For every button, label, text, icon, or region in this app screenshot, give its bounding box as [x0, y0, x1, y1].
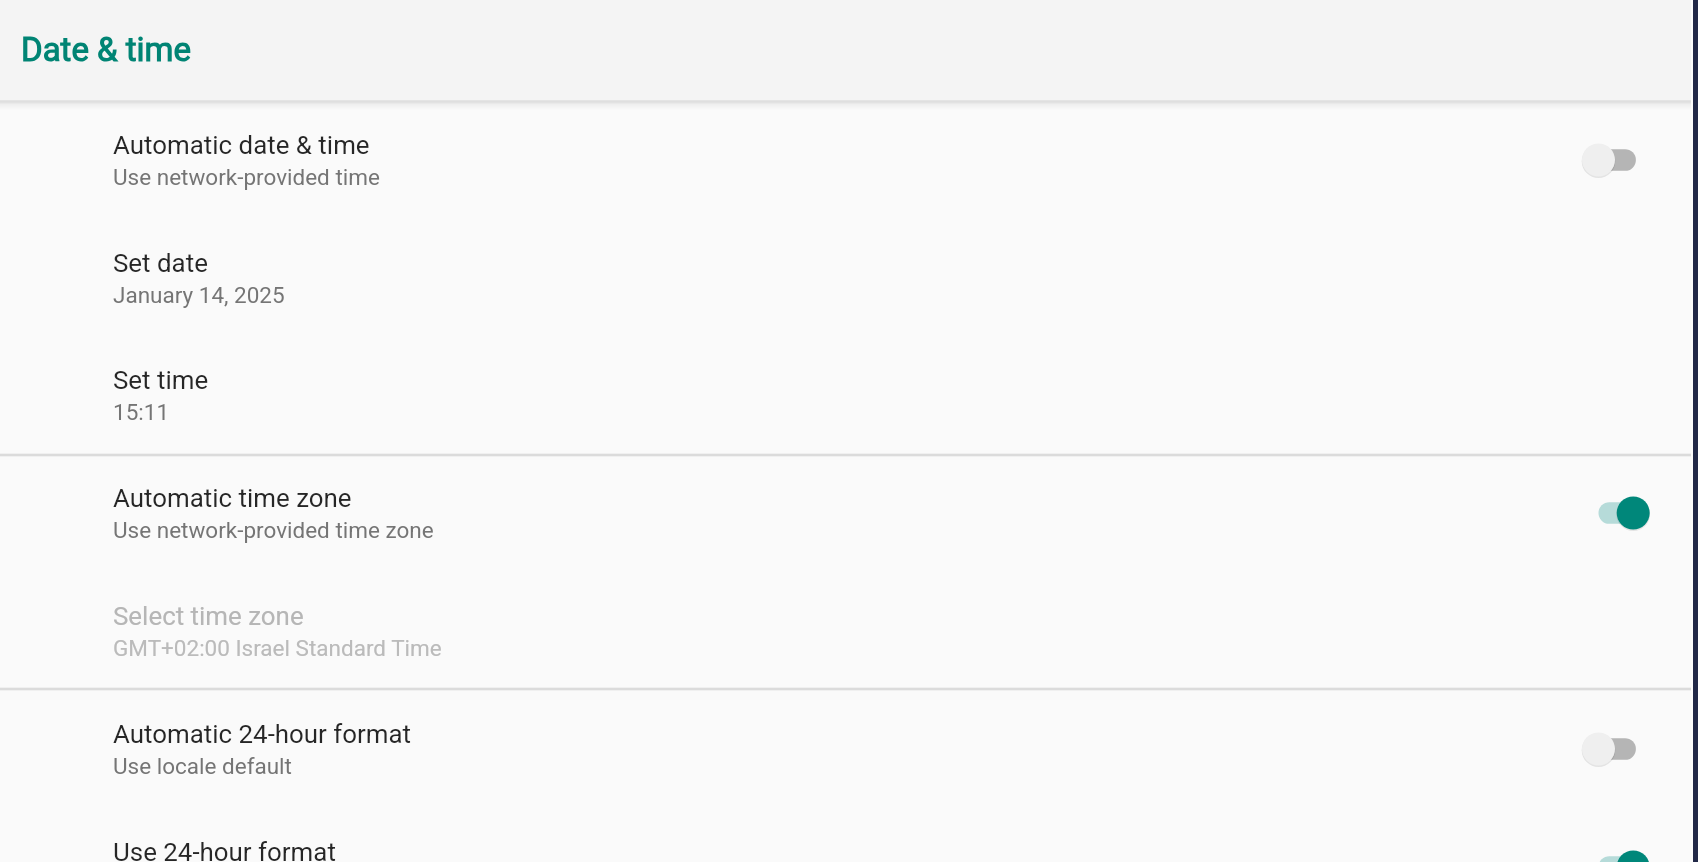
button[interactable]: Automatic time zone — [0, 454, 1698, 572]
button[interactable]: Use 24-hour format, on — [1582, 808, 1652, 862]
button[interactable]: Automatic 24-hour format — [0, 690, 1698, 808]
button[interactable]: Automatic date & time, off — [1582, 101, 1652, 219]
staticText: 15:11 — [113, 399, 170, 425]
staticText: January 14, 2025 — [113, 282, 285, 308]
staticText: Set date — [113, 248, 208, 278]
staticText: Use locale default — [113, 753, 292, 779]
button[interactable]: Use 24-hour format — [0, 808, 1698, 862]
button[interactable]: Automatic time zone, on — [1582, 454, 1652, 572]
staticText: Use network-provided time zone — [113, 517, 434, 543]
staticText: Automatic time zone — [113, 483, 352, 513]
staticText: Automatic 24-hour format — [113, 719, 412, 749]
button[interactable]: Automatic date & time — [0, 101, 1698, 219]
staticText: Use network-provided time — [113, 164, 380, 190]
staticText: Select time zone — [113, 601, 304, 631]
button[interactable]: Select time zone — [0, 572, 1698, 690]
staticText: Date & time — [21, 30, 192, 69]
staticText: Use 24-hour format — [113, 837, 336, 862]
staticText: Automatic date & time — [113, 130, 370, 160]
staticText: Set time — [113, 365, 209, 395]
staticText: GMT+02:00 Israel Standard Time — [113, 635, 442, 661]
button[interactable]: Set time — [0, 336, 1698, 454]
button[interactable]: Set date — [0, 219, 1698, 337]
button[interactable]: Automatic 24-hour format, off — [1582, 690, 1652, 808]
